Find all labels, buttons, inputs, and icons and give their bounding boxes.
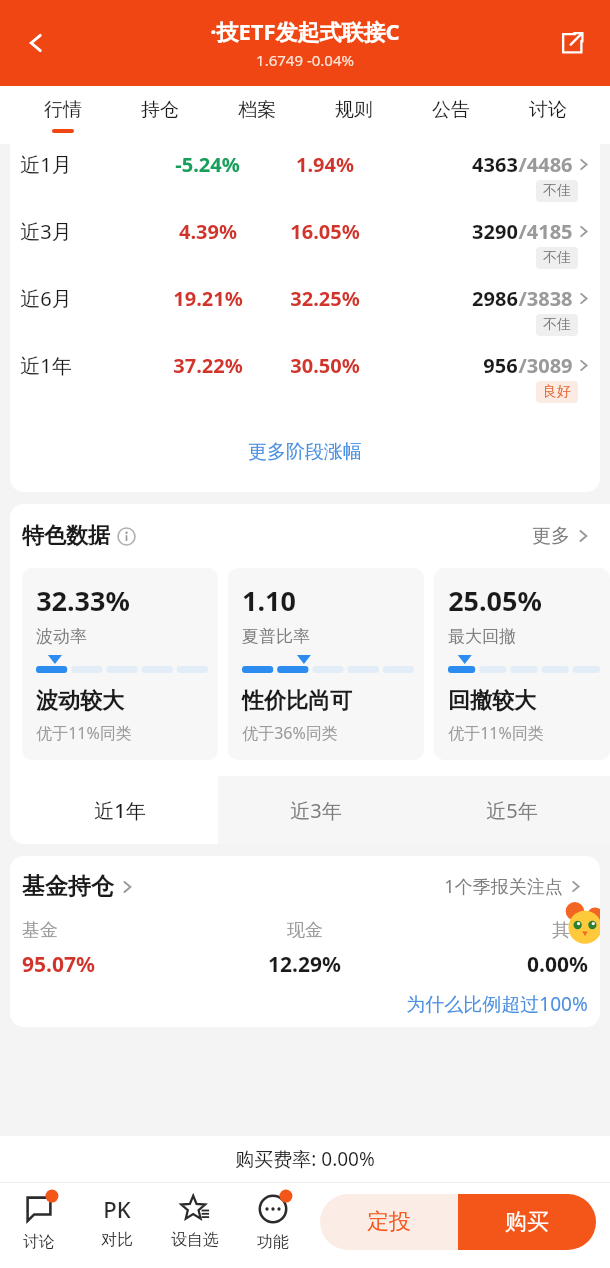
button[interactable]: 公告 [402,86,499,129]
button[interactable]: 定投 [320,1194,458,1250]
button[interactable]: 近1年 [22,776,218,844]
button[interactable]: Back [10,17,62,69]
staticText: 更多 [532,524,570,548]
staticText: -5.24% [175,151,240,178]
staticText: 95.07% [22,950,95,979]
button[interactable]: 功能 [234,1183,312,1260]
button[interactable]: 近3年 [218,776,414,844]
staticText: ·技ETF发起式联接C [210,16,400,46]
staticText: 1.94% [296,151,354,178]
staticText: /3838 [518,285,573,312]
staticText: PK [103,1194,131,1224]
staticText: 夏普比率 [242,626,310,647]
staticText: 12.29% [268,950,341,979]
staticText: 2986 [472,285,518,312]
staticText: 近1年 [94,797,146,824]
staticText: 波动较大 [36,687,124,715]
button[interactable]: 1个季报关注点 [444,874,582,899]
staticText: 最大回撤 [448,626,516,647]
staticText: 37.22% [173,352,243,379]
button[interactable]: 购买 [458,1194,596,1250]
staticText: 回撤较大 [448,687,536,715]
staticText: 16.05% [290,218,360,245]
staticText: 公告 [432,98,470,122]
staticText: 1.6749 -0.04% [256,50,354,70]
button[interactable]: 32.33% [22,568,218,760]
staticText: 良好 [543,383,571,401]
button[interactable]: 基金持仓 [22,872,134,901]
staticText: 4363 [472,151,518,178]
staticText: 25.05% [448,582,542,619]
staticText: 4.39% [179,218,237,245]
staticText: /3089 [518,352,573,379]
staticText: 基金持仓 [22,872,114,901]
staticText: 19.21% [173,285,243,312]
button[interactable]: 为什么比例超过100% [406,991,588,1017]
staticText: 近1年 [20,352,72,379]
staticText: 不佳 [543,249,571,267]
staticText: 持仓 [141,98,179,122]
button[interactable]: 近1年 [10,345,600,412]
staticText: 规则 [335,98,373,122]
button[interactable]: 讨论 [499,86,596,129]
button[interactable]: 1.10 [228,568,424,760]
staticText: 优于11%同类 [36,722,132,744]
staticText: 优于11%同类 [448,722,544,744]
staticText: 0.00% [527,950,588,979]
staticText: 优于36%同类 [242,722,338,744]
button[interactable]: Share [546,17,598,69]
button[interactable]: 更多阶段涨幅 [10,412,600,492]
staticText: 购买 [505,1208,549,1236]
button[interactable]: 档案 [208,86,305,129]
button[interactable]: 持仓 [111,86,208,129]
staticText: 波动率 [36,626,87,647]
staticText: 性价比尚可 [242,687,352,715]
staticText: 其他 [552,919,588,942]
button[interactable]: 更多 [532,524,590,548]
staticText: 定投 [367,1208,411,1236]
staticText: 3290 [472,218,518,245]
staticText: 购买费率: 0.00% [235,1146,375,1172]
staticText: 1.10 [242,582,296,619]
staticText: /4185 [518,218,573,245]
button[interactable]: 近6月 [10,278,600,345]
staticText: 不佳 [543,316,571,334]
staticText: 档案 [238,98,276,122]
staticText: 32.25% [290,285,360,312]
button[interactable]: 近3月 [10,211,600,278]
staticText: 为什么比例超过100% [406,991,588,1017]
staticText: 近3月 [20,218,72,245]
staticText: 更多阶段涨幅 [248,440,362,464]
staticText: 设自选 [171,1230,219,1250]
staticText: /4486 [518,151,573,178]
button[interactable]: 行情 [14,86,111,133]
button[interactable]: 近5年 [414,776,610,844]
button[interactable]: 规则 [305,86,402,129]
button[interactable]: 设自选 [156,1183,234,1260]
staticText: 讨论 [529,98,567,122]
staticText: 近3年 [290,797,342,824]
staticText: 行情 [44,98,82,122]
staticText: 1个季报关注点 [444,874,563,899]
button[interactable]: 近1月 [10,144,600,211]
staticText: 956 [483,352,518,379]
button[interactable]: 讨论 [0,1183,78,1260]
staticText: 特色数据 [22,522,110,550]
staticText: 不佳 [543,182,571,200]
button[interactable]: PK [78,1183,156,1260]
staticText: 讨论 [23,1232,55,1252]
staticText: 近6月 [20,285,72,312]
staticText: 32.33% [36,582,130,619]
staticText: 近1月 [20,151,72,178]
staticText: 对比 [101,1230,133,1250]
button[interactable]: 25.05% [434,568,610,760]
staticText: 近5年 [486,797,538,824]
staticText: 功能 [257,1232,289,1252]
staticText: 现金 [287,919,323,942]
staticText: 30.50% [290,352,360,379]
staticText: 基金 [22,919,58,942]
